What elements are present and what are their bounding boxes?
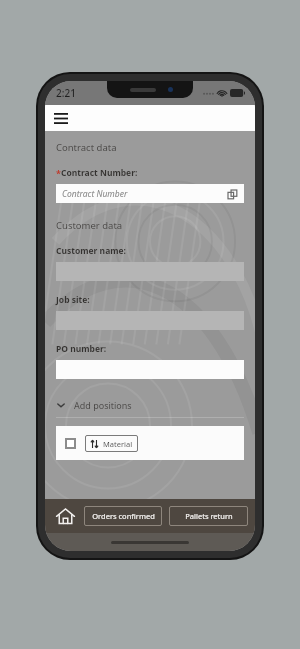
staticText: Orders confirmed <box>92 511 155 521</box>
staticText: 2:21 <box>56 86 76 100</box>
staticText: Contract Number: <box>61 167 138 179</box>
staticText: Customer data <box>56 219 123 232</box>
staticText: Contract Number <box>62 188 128 200</box>
button[interactable]: Pallets return <box>169 506 248 526</box>
other: Copy <box>226 188 238 200</box>
staticText: PO number: <box>56 343 107 355</box>
button[interactable]: Orders confirmed <box>84 506 162 526</box>
staticText: Material <box>103 439 133 449</box>
button[interactable]: Contract Number <box>56 184 244 203</box>
staticText: * <box>56 167 61 179</box>
button[interactable]: Select position <box>65 438 76 449</box>
staticText: Customer name: <box>56 245 126 257</box>
staticText: Job site: <box>56 294 90 306</box>
button[interactable]: Add positions <box>56 396 244 414</box>
staticText: Pallets return <box>185 511 233 521</box>
button[interactable]: Material <box>90 435 133 452</box>
staticText: Contract data <box>56 141 117 154</box>
button[interactable]: Home <box>52 503 78 529</box>
staticText: Add positions <box>74 399 132 411</box>
button[interactable]: Menu <box>50 107 72 129</box>
